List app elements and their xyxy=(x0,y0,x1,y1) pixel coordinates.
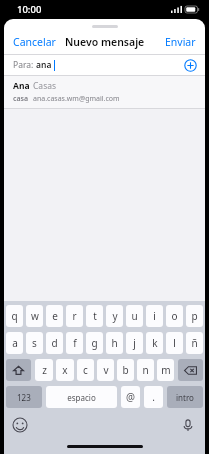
staticText: Para: xyxy=(13,59,36,71)
button[interactable]: Dictado xyxy=(180,417,196,433)
staticText: k xyxy=(152,336,158,350)
button[interactable]: w xyxy=(26,305,43,327)
staticText: w xyxy=(31,309,39,323)
staticText: n xyxy=(142,363,149,377)
staticText: l xyxy=(173,336,176,350)
button[interactable]: j xyxy=(126,332,143,354)
button[interactable]: Mayúsculas xyxy=(6,359,31,381)
staticText: ana.casas.wm@gmail.com xyxy=(33,94,120,104)
button[interactable]: f xyxy=(66,332,83,354)
button[interactable]: v xyxy=(97,359,114,381)
staticText: d xyxy=(51,336,58,350)
button[interactable]: c xyxy=(77,359,94,381)
staticText: a xyxy=(12,336,18,350)
staticText: espacio xyxy=(67,392,96,403)
button[interactable]: b xyxy=(117,359,134,381)
button[interactable]: g xyxy=(86,332,103,354)
staticText: i xyxy=(153,309,156,323)
staticText: q xyxy=(11,309,18,323)
button[interactable]: o xyxy=(166,305,183,327)
staticText: e xyxy=(52,309,58,323)
staticText: Ana xyxy=(13,80,30,92)
button[interactable]: ñ xyxy=(186,332,203,354)
button[interactable]: m xyxy=(157,359,174,381)
button[interactable]: l xyxy=(166,332,183,354)
button[interactable]: y xyxy=(106,305,123,327)
button[interactable]: Ana xyxy=(4,76,205,108)
button[interactable]: u xyxy=(126,305,143,327)
button[interactable]: x xyxy=(56,359,74,381)
button[interactable]: intro xyxy=(167,386,203,408)
staticText: s xyxy=(32,336,37,350)
staticText: intro xyxy=(176,392,194,403)
staticText: v xyxy=(103,363,109,377)
button[interactable]: Para: xyxy=(4,55,205,75)
staticText: c xyxy=(83,363,88,377)
button[interactable]: 123 xyxy=(6,386,42,408)
button[interactable]: s xyxy=(26,332,43,354)
staticText: h xyxy=(111,336,118,350)
button[interactable]: q xyxy=(6,305,23,327)
button[interactable]: r xyxy=(66,305,83,327)
button[interactable]: d xyxy=(46,332,63,354)
staticText: o xyxy=(171,309,178,323)
staticText: z xyxy=(42,363,47,377)
staticText: 10:00 xyxy=(17,3,42,16)
staticText: r xyxy=(72,309,77,323)
button[interactable]: Enviar xyxy=(159,32,205,52)
staticText: casa xyxy=(13,94,29,104)
staticText: j xyxy=(133,336,136,350)
button[interactable]: Emoji xyxy=(12,417,28,433)
button[interactable]: @ xyxy=(121,386,140,408)
staticText: t xyxy=(93,309,97,323)
button[interactable]: p xyxy=(186,305,203,327)
staticText: Nuevo mensaje xyxy=(65,35,145,49)
button[interactable]: h xyxy=(106,332,123,354)
button[interactable]: . xyxy=(144,386,163,408)
button[interactable]: e xyxy=(46,305,63,327)
staticText: u xyxy=(131,309,138,323)
button[interactable]: z xyxy=(35,359,53,381)
staticText: b xyxy=(122,363,129,377)
button[interactable]: espacio xyxy=(46,386,117,408)
staticText: g xyxy=(91,336,98,350)
staticText: ñ xyxy=(191,336,198,350)
button[interactable]: Cancelar xyxy=(4,32,62,52)
staticText: @ xyxy=(126,390,135,404)
button[interactable]: i xyxy=(146,305,163,327)
staticText: f xyxy=(73,336,77,350)
button[interactable]: a xyxy=(6,332,23,354)
button[interactable]: Borrar xyxy=(178,359,203,381)
staticText: ana xyxy=(36,59,52,71)
staticText: x xyxy=(62,363,68,377)
staticText: Casas xyxy=(33,80,57,92)
staticText: 123 xyxy=(17,392,31,403)
button[interactable]: t xyxy=(86,305,103,327)
staticText: m xyxy=(161,363,171,377)
button[interactable]: k xyxy=(146,332,163,354)
staticText: p xyxy=(191,309,198,323)
button[interactable]: Añadir contacto xyxy=(184,59,197,72)
button[interactable]: n xyxy=(137,359,154,381)
staticText: . xyxy=(152,390,155,404)
staticText: y xyxy=(112,309,118,323)
